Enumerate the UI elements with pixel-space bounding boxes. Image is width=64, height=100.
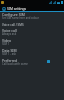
staticText: SIM settings — [7, 6, 27, 10]
button[interactable]: Video — [0, 37, 64, 47]
staticText: Always ask — [2, 32, 17, 36]
staticText: Video — [2, 38, 11, 43]
button[interactable]: Voice call / SMS — [0, 21, 64, 27]
button[interactable]: Voice call — [0, 27, 64, 37]
staticText: Voice call — [2, 28, 17, 33]
staticText: Preferred — [2, 58, 18, 63]
staticText: Configure SIM — [2, 12, 25, 17]
button[interactable]: Configure SIM — [0, 12, 64, 20]
staticText: SIM 1 — [2, 42, 10, 46]
button[interactable]: Up — [1, 6, 6, 11]
staticText: Call back with same — [2, 62, 28, 66]
staticText: SIM 1 - ask — [2, 52, 17, 56]
button[interactable]: Preferred — [0, 57, 64, 67]
button[interactable]: Toggle — [47, 60, 50, 63]
staticText: Voice call / SMS — [2, 23, 24, 27]
button[interactable]: Data SIM — [0, 47, 64, 57]
staticText: Data SIM — [2, 48, 17, 53]
staticText: Set SIM name here and colour — [2, 16, 39, 20]
